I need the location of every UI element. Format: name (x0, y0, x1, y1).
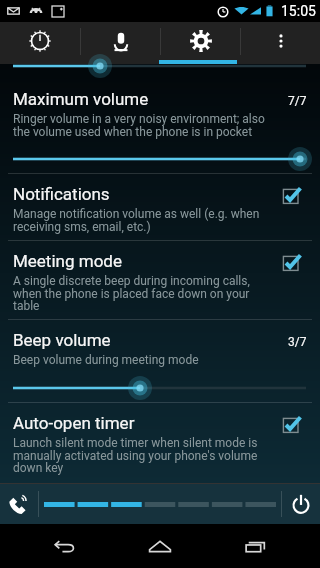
button[interactable]: Call volume (0, 484, 38, 524)
button[interactable]: Settings (161, 22, 240, 64)
staticText: 3/7 (288, 330, 307, 350)
button[interactable]: Beep volume (0, 320, 320, 402)
button[interactable]: More options (241, 22, 320, 64)
button[interactable]: Back (32, 524, 96, 568)
staticText: Meeting mode (13, 251, 122, 271)
staticText: Beep volume during meeting mode (13, 353, 199, 367)
button[interactable]: Notifications (0, 174, 320, 240)
button[interactable]: Timer (0, 22, 80, 64)
staticText: Ringer volume in a very noisy environmen… (13, 112, 265, 138)
staticText: Notifications (13, 184, 110, 204)
staticText: Auto-open timer (13, 413, 135, 433)
staticText: 7/7 (288, 89, 307, 109)
button[interactable]: Power (282, 484, 320, 524)
button[interactable]: Auto-open timer (0, 403, 320, 481)
staticText: Beep volume (13, 330, 288, 350)
staticText: 15:05 (281, 3, 316, 19)
button[interactable] (39, 484, 281, 524)
button[interactable]: Voice (81, 22, 160, 64)
button[interactable]: Maximum volume (0, 79, 320, 173)
staticText: Manage notification volume as well (e.g.… (13, 207, 265, 233)
staticText: Maximum volume (13, 89, 288, 109)
staticText: Launch silent mode timer when silent mod… (13, 436, 265, 474)
button[interactable]: Meeting mode (0, 241, 320, 319)
button[interactable]: Recents (224, 524, 288, 568)
staticText: A single discrete beep during incoming c… (13, 274, 265, 312)
button[interactable]: Home (128, 524, 192, 568)
